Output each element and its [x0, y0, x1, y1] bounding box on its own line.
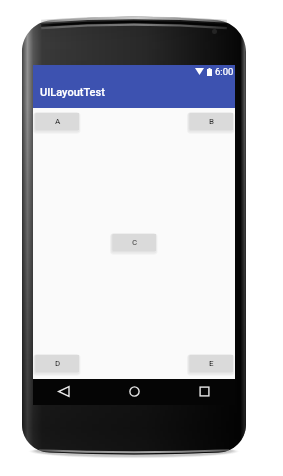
button[interactable]: UILayoutTest: [33, 79, 235, 106]
button[interactable]: Home: [122, 379, 146, 403]
staticText: A: [55, 117, 61, 126]
staticText: 6:00: [215, 66, 234, 77]
button[interactable]: D: [36, 355, 79, 372]
button[interactable]: E: [190, 355, 233, 372]
button[interactable]: A: [36, 113, 79, 130]
button[interactable]: Back: [51, 379, 75, 403]
staticText: E: [209, 359, 214, 368]
staticText: B: [209, 117, 215, 126]
staticText: UILayoutTest: [40, 86, 105, 99]
button[interactable]: Recents: [192, 379, 216, 403]
staticText: D: [55, 359, 61, 368]
button[interactable]: C: [113, 234, 156, 251]
button[interactable]: B: [190, 113, 233, 130]
staticText: C: [132, 238, 138, 247]
